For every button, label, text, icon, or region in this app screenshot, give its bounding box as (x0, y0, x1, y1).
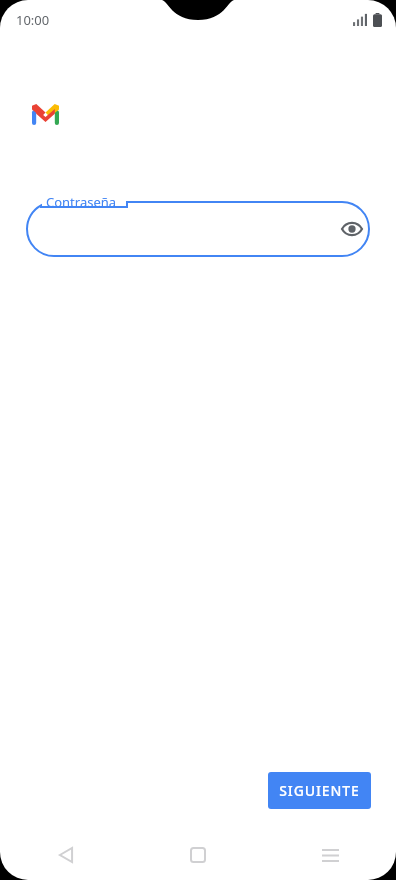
button[interactable]: Show password (334, 211, 370, 247)
button[interactable]: Contraseña (26, 193, 370, 257)
button[interactable]: Home (132, 830, 264, 880)
button[interactable]: SIGUIENTE (268, 772, 371, 809)
staticText: SIGUIENTE (279, 781, 360, 800)
button[interactable]: Recent apps (264, 830, 396, 880)
button[interactable]: Back (0, 830, 132, 880)
staticText: Contraseña (46, 193, 117, 211)
staticText: 10:00 (16, 11, 50, 29)
